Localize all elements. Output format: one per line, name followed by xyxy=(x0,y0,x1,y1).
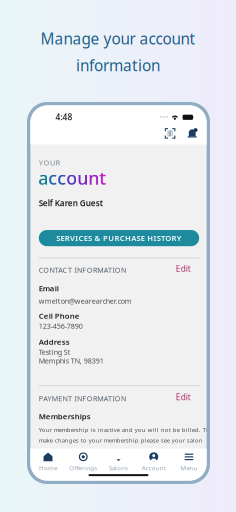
staticText: t xyxy=(99,166,106,190)
staticText: Menu xyxy=(180,464,197,472)
staticText: Email xyxy=(39,283,59,294)
staticText: n xyxy=(88,166,99,190)
button[interactable]: Salons xyxy=(101,452,136,472)
staticText: u xyxy=(77,166,88,190)
staticText: Memberships xyxy=(39,411,91,421)
button[interactable]: Home xyxy=(30,452,66,472)
staticText: Salons xyxy=(109,464,128,472)
staticText: Cell Phone xyxy=(39,310,80,321)
staticText: 123-456-7890 xyxy=(39,321,83,331)
staticText: c xyxy=(48,166,57,190)
staticText: Edit xyxy=(176,391,191,403)
button[interactable]: Edit xyxy=(176,393,190,401)
button[interactable]: Edit xyxy=(176,265,190,273)
staticText: 4:48 xyxy=(55,111,72,123)
staticText: Testing St xyxy=(39,347,71,357)
button[interactable]: SERVICES & PURCHASE HISTORY xyxy=(39,230,199,246)
staticText: Self Karen Guest xyxy=(39,197,103,209)
button[interactable]: Account xyxy=(136,452,171,472)
staticText: information xyxy=(76,55,160,76)
staticText: Home xyxy=(39,464,57,472)
button[interactable]: Scan code xyxy=(163,126,178,140)
staticText: a xyxy=(38,166,48,190)
staticText: c xyxy=(57,166,66,190)
staticText: Edit xyxy=(176,263,191,274)
staticText: make changes to your membership please s… xyxy=(39,436,203,444)
staticText: CONTACT INFORMATION xyxy=(39,265,126,275)
staticText: wmelton@wearearcher.com xyxy=(39,296,132,306)
staticText: Memphis TN, 98391 xyxy=(39,356,104,366)
staticText: Account xyxy=(142,464,166,472)
staticText: YOUR xyxy=(39,158,61,168)
staticText: Your membership is inactive and you will… xyxy=(39,426,210,434)
button[interactable]: Menu xyxy=(171,452,207,472)
button[interactable]: Notifications xyxy=(186,126,200,140)
staticText: PAYMENT INFORMATION xyxy=(39,394,126,403)
staticText: o xyxy=(66,166,77,190)
staticText: Offerings xyxy=(69,464,97,472)
staticText: Address xyxy=(39,336,70,347)
button[interactable]: Offerings xyxy=(66,452,101,472)
staticText: SERVICES & PURCHASE HISTORY xyxy=(56,233,182,243)
staticText: Manage your account xyxy=(40,28,195,49)
